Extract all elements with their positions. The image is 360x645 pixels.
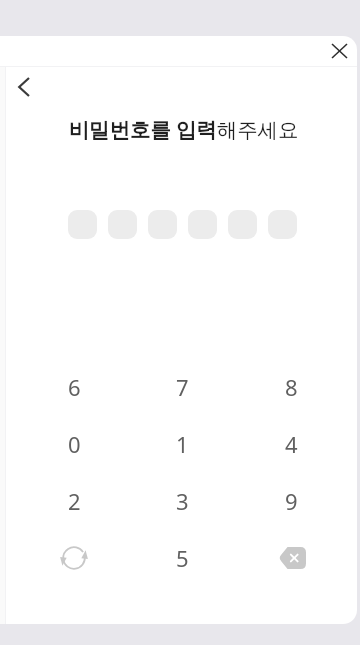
button[interactable]: 1 <box>128 415 237 472</box>
button[interactable]: 4 <box>237 415 346 472</box>
staticText: 비밀번호를 입력해주세요 <box>5 115 357 143</box>
button[interactable]: Close <box>318 36 357 66</box>
button[interactable]: Shuffle keypad <box>20 529 128 586</box>
button[interactable]: Backspace <box>237 529 346 586</box>
staticText: 6 <box>68 372 81 402</box>
button[interactable]: 6 <box>20 358 128 415</box>
button[interactable]: 5 <box>128 529 237 586</box>
staticText: 1 <box>176 429 189 459</box>
staticText: 7 <box>176 372 189 402</box>
staticText: 0 <box>68 429 81 459</box>
button[interactable]: 9 <box>237 472 346 529</box>
button[interactable]: 7 <box>128 358 237 415</box>
staticText: 9 <box>285 486 298 516</box>
staticText: 3 <box>176 486 189 516</box>
staticText: 4 <box>285 429 298 459</box>
button[interactable]: 0 <box>20 415 128 472</box>
other: Shuffle keypad <box>56 540 92 576</box>
button[interactable]: Back <box>0 68 46 106</box>
staticText: 5 <box>176 543 189 573</box>
button[interactable]: 3 <box>128 472 237 529</box>
staticText: 8 <box>285 372 298 402</box>
other: Backspace <box>274 540 310 576</box>
staticText: 2 <box>68 486 81 516</box>
button[interactable]: 8 <box>237 358 346 415</box>
button[interactable]: 2 <box>20 472 128 529</box>
